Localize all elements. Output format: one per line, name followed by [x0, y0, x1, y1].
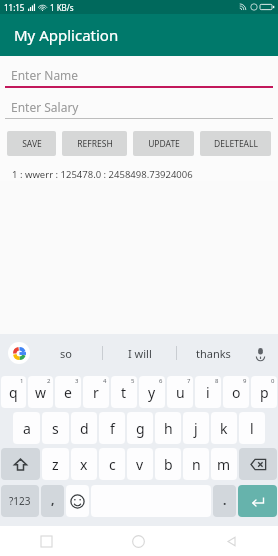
staticText: Enter Salary [11, 99, 79, 115]
staticText: My Application [14, 25, 119, 45]
button[interactable]: r [83, 376, 109, 408]
button[interactable]: o [223, 376, 249, 408]
staticText: 1 [20, 377, 24, 385]
button[interactable]: k [211, 412, 237, 444]
button[interactable]: v [127, 448, 153, 480]
staticText: Enter Name [11, 67, 79, 83]
staticText: 8 [215, 377, 219, 385]
staticText: y [148, 383, 156, 402]
button[interactable]: thanks [177, 334, 250, 372]
button[interactable]: Home [92, 526, 185, 556]
button[interactable]: p [251, 376, 277, 408]
staticText: b [164, 455, 173, 474]
button[interactable]: b [155, 448, 181, 480]
staticText: . [223, 492, 227, 508]
button[interactable]: i [195, 376, 221, 408]
button[interactable]: . [213, 485, 236, 517]
staticText: 1 : wwerr : 125478.0 : 2458498.73924006 [12, 168, 193, 181]
staticText: u [176, 383, 185, 402]
staticText: z [52, 455, 59, 474]
staticText: t [121, 383, 127, 402]
staticText: q [9, 383, 18, 402]
button[interactable]: m [211, 448, 237, 480]
staticText: w [35, 383, 47, 402]
button[interactable]: Voice input [250, 343, 270, 363]
staticText: I will [128, 346, 152, 361]
button[interactable]: Shift [1, 448, 40, 480]
staticText: n [192, 455, 201, 474]
staticText: 11:15 [4, 2, 25, 13]
staticText: 5 [131, 377, 135, 385]
staticText: j [194, 419, 198, 438]
button[interactable]: Enter Name [5, 64, 273, 88]
button[interactable]: z [42, 448, 69, 480]
button[interactable]: j [183, 412, 209, 444]
button[interactable]: s [42, 412, 69, 444]
button[interactable]: q [1, 376, 26, 408]
staticText: r [93, 383, 99, 402]
staticText: so [60, 346, 72, 361]
button[interactable]: Emoji [66, 485, 89, 517]
button[interactable]: Backspace [239, 448, 277, 480]
button[interactable]: n [183, 448, 209, 480]
staticText: a [23, 419, 31, 438]
staticText: UPDATE [148, 138, 180, 150]
button[interactable]: , [41, 485, 64, 517]
staticText: k [220, 419, 228, 438]
staticText: , [51, 491, 55, 507]
staticText: thanks [196, 346, 231, 361]
button[interactable]: Recents [0, 526, 92, 556]
button[interactable]: I will [103, 334, 176, 372]
staticText: 0 [271, 377, 275, 385]
button[interactable]: Back [185, 526, 278, 556]
button[interactable]: Enter Salary [5, 96, 273, 119]
staticText: SAVE [22, 138, 42, 150]
button[interactable]: UPDATE [133, 131, 194, 156]
staticText: m [217, 455, 231, 474]
staticText: 2 [47, 377, 51, 385]
button[interactable]: t [111, 376, 137, 408]
button[interactable]: Google [8, 342, 30, 364]
staticText: i [206, 383, 210, 402]
button[interactable]: REFRESH [62, 131, 127, 156]
staticText: v [136, 455, 144, 474]
staticText: o [232, 383, 241, 402]
button[interactable]: w [28, 376, 53, 408]
staticText: 1 KB/s [50, 2, 74, 13]
staticText: s [52, 419, 59, 438]
button[interactable]: DELETEALL [200, 131, 271, 156]
button[interactable]: d [71, 412, 97, 444]
staticText: p [260, 383, 269, 402]
staticText: x [80, 455, 88, 474]
staticText: 3 [75, 377, 79, 385]
staticText: h [164, 419, 173, 438]
staticText: d [80, 419, 89, 438]
staticText: e [64, 383, 72, 402]
button[interactable]: x [71, 448, 97, 480]
staticText: g [136, 419, 145, 438]
button[interactable]: ?123 [1, 485, 39, 517]
staticText: 7 [187, 377, 191, 385]
button[interactable]: SAVE [7, 131, 56, 156]
staticText: f [110, 419, 115, 438]
button[interactable]: l [239, 412, 265, 444]
staticText: c [109, 455, 116, 474]
staticText: DELETEALL [214, 138, 258, 150]
button[interactable]: so [30, 334, 102, 372]
button[interactable]: Enter [238, 485, 277, 517]
staticText: 6 [159, 377, 163, 385]
button[interactable]: f [99, 412, 125, 444]
button[interactable]: y [139, 376, 165, 408]
button[interactable]: h [155, 412, 181, 444]
button[interactable]: e [55, 376, 81, 408]
button[interactable]: g [127, 412, 153, 444]
staticText: ?123 [9, 494, 31, 508]
staticText: 4 [103, 377, 107, 385]
button[interactable]: c [99, 448, 125, 480]
staticText: l [250, 419, 254, 438]
staticText: REFRESH [77, 138, 113, 150]
button[interactable]: u [167, 376, 193, 408]
staticText: 9 [243, 377, 247, 385]
button[interactable]: a [13, 412, 40, 444]
